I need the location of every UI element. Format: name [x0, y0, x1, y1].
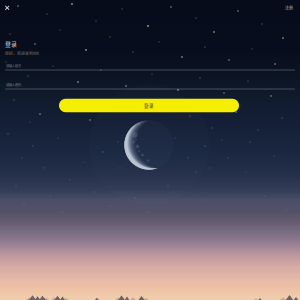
staticText: 请输入账号 [6, 63, 21, 68]
button[interactable]: Close [2, 2, 13, 13]
staticText: 登录 [5, 40, 17, 48]
button[interactable]: 登录 [59, 99, 239, 112]
staticText: 登录 [144, 102, 154, 109]
staticText: 注册 [285, 5, 293, 11]
button[interactable]: 注册 [283, 3, 295, 13]
staticText: 请输入密码 [6, 82, 21, 87]
staticText: 您好，欢迎来到xxx [5, 50, 39, 56]
